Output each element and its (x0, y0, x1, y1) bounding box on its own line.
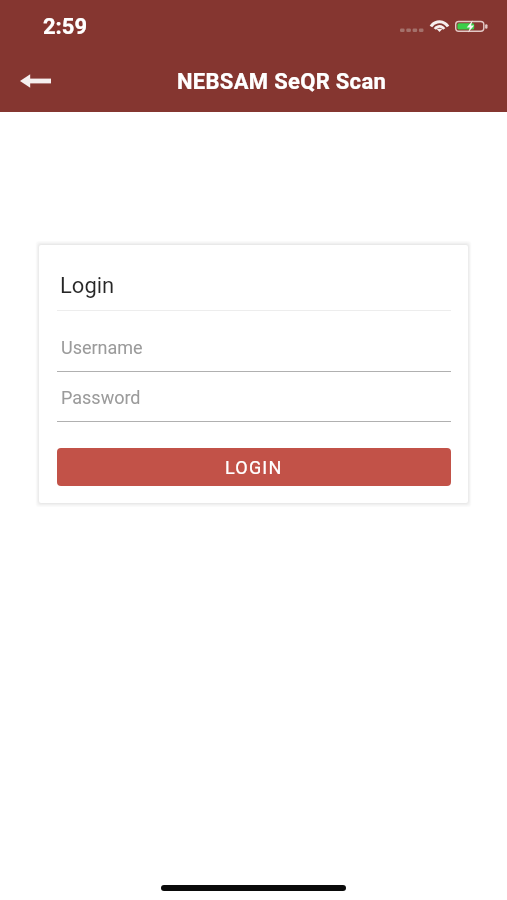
staticText: LOGIN (225, 457, 283, 478)
staticText: Login (60, 273, 115, 299)
staticText: NEBSAM SeQR Scan (177, 69, 387, 95)
button[interactable]: LOGIN (57, 448, 451, 486)
button[interactable]: Back (0, 52, 56, 112)
button[interactable]: Username (57, 337, 451, 372)
staticText: Password (61, 387, 141, 408)
button[interactable]: Password (57, 387, 451, 422)
staticText: 2:59 (43, 14, 88, 40)
staticText: Username (61, 337, 143, 358)
